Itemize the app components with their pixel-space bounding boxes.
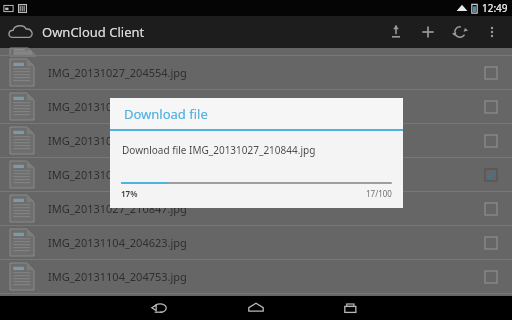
staticText: 12:49	[482, 1, 508, 15]
staticText: OwnCloud Client	[42, 23, 145, 41]
button[interactable]: Select IMG_20131027_210836.jpg	[480, 130, 502, 152]
button[interactable]: More options	[476, 16, 508, 48]
button[interactable]: Select IMG_20131027_210847.jpg	[480, 198, 502, 220]
button[interactable]: Add	[412, 16, 444, 48]
button[interactable]: Select IMG_20131104_204623.jpg	[480, 232, 502, 254]
button[interactable]: Select IMG_20131027_204554.jpg	[480, 62, 502, 84]
staticText: IMG_20131104_204753.jpg	[48, 269, 480, 284]
button[interactable]	[0, 48, 512, 56]
button[interactable]: Select IMG_20131027_210829.jpg	[480, 96, 502, 118]
button[interactable]: Refresh	[444, 16, 476, 48]
button[interactable]: Home	[236, 296, 276, 320]
button[interactable]: Back	[140, 296, 180, 320]
button[interactable]: Upload	[380, 16, 412, 48]
staticText: 17/100	[366, 188, 392, 199]
staticText: IMG_20131027_204554.jpg	[48, 65, 480, 80]
staticText: IMG_20131027_210847.jpg	[48, 201, 480, 216]
button[interactable]: IMG_20131027_210829.jpg	[0, 90, 512, 124]
staticText: IMG_20131027_210836.jpg	[48, 133, 480, 148]
button[interactable]: IMG_20131027_210836.jpg	[0, 124, 512, 158]
staticText: IMG_20131027_210844.jpg	[48, 167, 480, 182]
button[interactable]: Select IMG_20131104_204753.jpg	[480, 266, 502, 288]
staticText: 17%	[121, 188, 138, 199]
staticText: Download file IMG_20131027_210844.jpg	[122, 143, 316, 157]
button[interactable]: IMG_20131104_204623.jpg	[0, 226, 512, 260]
button[interactable]: IMG_20131027_204554.jpg	[0, 56, 512, 90]
button[interactable]: Select IMG_20131027_210844.jpg	[480, 164, 502, 186]
button[interactable]: Recent apps	[332, 296, 372, 320]
button[interactable]: IMG_20131104_204753.jpg	[0, 260, 512, 294]
staticText: IMG_20131104_204623.jpg	[48, 235, 480, 250]
button[interactable]: IMG_20131027_210844.jpg	[0, 158, 512, 192]
staticText: Download file	[124, 105, 208, 123]
button[interactable]: IMG_20131027_210847.jpg	[0, 192, 512, 226]
staticText: IMG_20131027_210829.jpg	[48, 99, 480, 114]
